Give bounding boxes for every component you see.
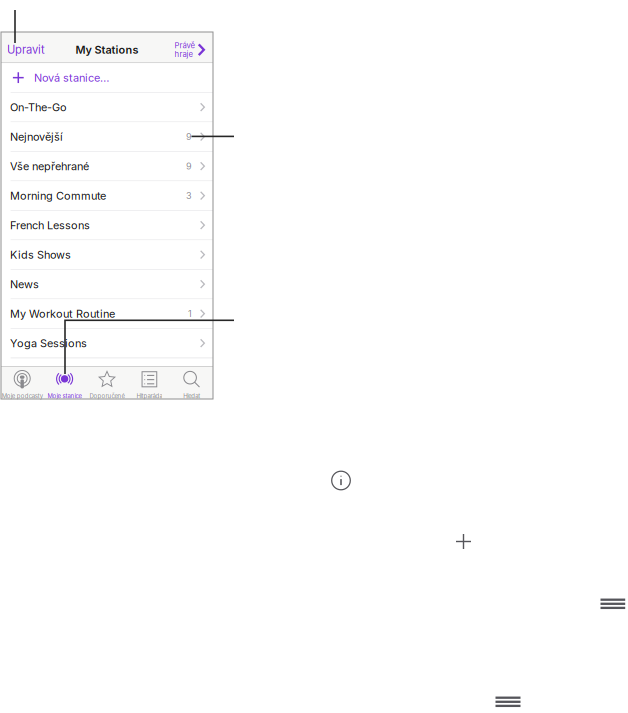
button[interactable]: Vše nepřehrané [1,152,213,180]
button[interactable]: Hitparáda [128,367,171,399]
staticText: 3 [186,190,192,201]
button[interactable]: Moje podcasty [1,367,43,399]
button[interactable]: Kids Shows [1,240,213,269]
staticText: Upravit [7,43,45,57]
button[interactable]: French Lessons [1,211,213,239]
staticText: Hitparáda [136,392,162,400]
button[interactable]: Nejnovější [1,122,213,151]
staticText: Kids Shows [10,248,71,261]
staticText: Právě [175,41,196,50]
staticText: Hledat [183,392,200,400]
button[interactable]: On-The-Go [1,93,213,121]
staticText: Yoga Sessions [10,336,87,350]
staticText: On-The-Go [10,100,67,114]
staticText: Doporučené [89,392,124,400]
staticText: Morning Commute [10,189,106,202]
staticText: hraje [175,49,194,59]
button[interactable]: Yoga Sessions [1,329,213,357]
staticText: My Workout Routine [10,307,115,320]
staticText: Vše nepřehrané [10,159,89,173]
staticText: Nová stanice… [34,71,109,84]
staticText: Moje stanice [48,392,82,400]
staticText: News [10,277,39,291]
button[interactable]: Morning Commute [1,181,213,210]
staticText: My Stations [75,43,138,56]
staticText: 9 [186,161,192,172]
button[interactable]: Právě [175,35,213,59]
button[interactable]: Hledat [171,367,213,399]
staticText: 1 [188,308,192,319]
button[interactable]: Upravit [1,35,45,59]
staticText: Nejnovější [10,130,63,143]
staticText: Moje podcasty [2,392,43,400]
staticText: 9 [186,131,192,142]
button[interactable]: My Workout Routine [1,299,213,328]
button[interactable]: Doporučené [86,367,128,399]
staticText: French Lessons [10,218,90,232]
button[interactable]: News [1,270,213,298]
button[interactable]: Moje stanice [43,367,86,399]
button[interactable]: Nová stanice… [1,63,213,92]
